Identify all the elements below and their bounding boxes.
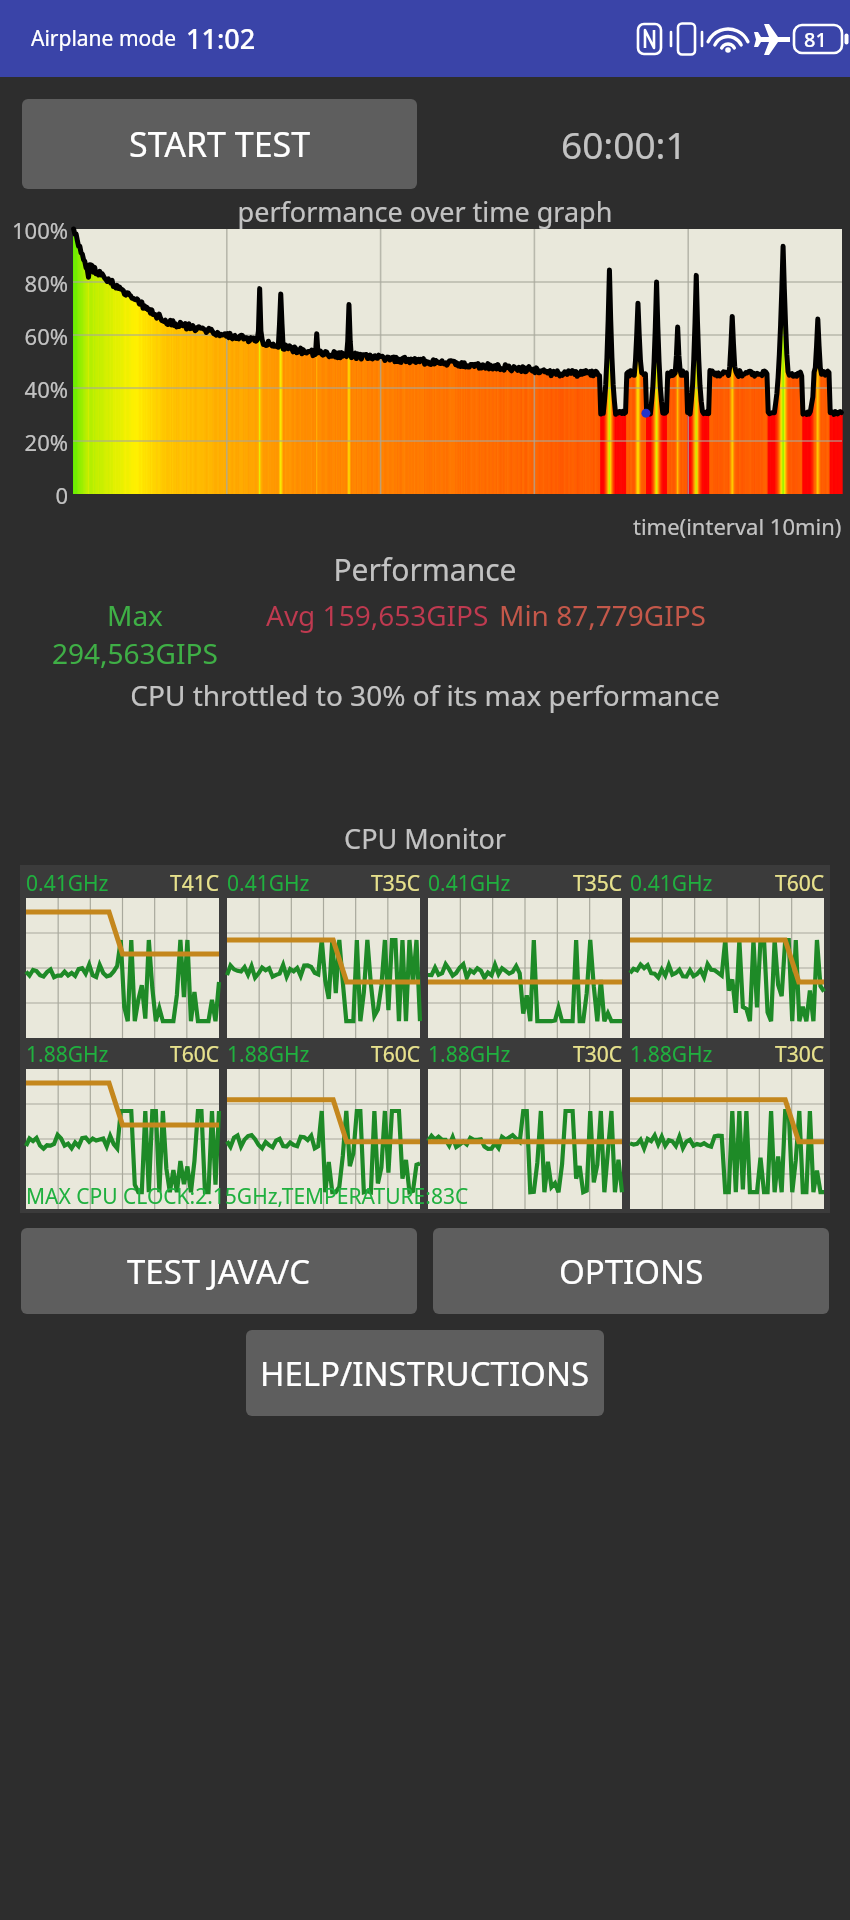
staticText: Avg 159,653GIPS bbox=[266, 596, 489, 634]
staticText: 1.88GHz bbox=[428, 1040, 511, 1069]
staticText: Max bbox=[107, 596, 163, 634]
staticText: 40% bbox=[0, 374, 68, 404]
button[interactable]: OPTIONS bbox=[433, 1228, 829, 1314]
staticText: 0.41GHz bbox=[26, 869, 109, 898]
staticText: Min 87,779GIPS bbox=[499, 596, 706, 634]
staticText: 1.88GHz bbox=[26, 1040, 109, 1069]
staticText: CPU Monitor bbox=[0, 820, 850, 857]
staticText: performance over time graph bbox=[0, 193, 850, 230]
button[interactable]: TEST JAVA/C bbox=[21, 1228, 417, 1314]
staticText: 0.41GHz bbox=[227, 869, 310, 898]
staticText: T30C bbox=[573, 1040, 622, 1069]
staticText: T60C bbox=[170, 1040, 219, 1069]
staticText: 60:00:1 bbox=[561, 119, 687, 169]
staticText: Performance bbox=[0, 549, 850, 590]
staticText: START TEST bbox=[129, 121, 311, 167]
button[interactable]: HELP/INSTRUCTIONS bbox=[246, 1330, 604, 1416]
staticText: 100% bbox=[0, 215, 68, 245]
staticText: 81 bbox=[804, 26, 827, 53]
staticText: T41C bbox=[170, 869, 219, 898]
staticText: 1.88GHz bbox=[227, 1040, 310, 1069]
staticText: T35C bbox=[573, 869, 622, 898]
staticText: time(interval 10min) bbox=[633, 511, 842, 541]
button[interactable]: START TEST bbox=[22, 99, 417, 189]
staticText: Airplane mode bbox=[31, 24, 177, 53]
staticText: MAX CPU CLOCK:2.15GHz,TEMPERATURE:83C bbox=[26, 1182, 469, 1211]
staticText: CPU throttled to 30% of its max performa… bbox=[0, 676, 850, 714]
staticText: 294,563GIPS bbox=[52, 634, 218, 672]
staticText: 60% bbox=[0, 321, 68, 351]
staticText: HELP/INSTRUCTIONS bbox=[260, 1351, 590, 1396]
staticText: 0 bbox=[0, 480, 68, 510]
staticText: 11:02 bbox=[186, 20, 256, 57]
staticText: 80% bbox=[0, 268, 68, 298]
staticText: 0.41GHz bbox=[428, 869, 511, 898]
staticText: T60C bbox=[775, 869, 824, 898]
staticText: T35C bbox=[371, 869, 420, 898]
staticText: 20% bbox=[0, 427, 68, 457]
staticText: T30C bbox=[775, 1040, 824, 1069]
staticText: T60C bbox=[371, 1040, 420, 1069]
staticText: 1.88GHz bbox=[630, 1040, 713, 1069]
staticText: 0.41GHz bbox=[630, 869, 713, 898]
staticText: TEST JAVA/C bbox=[127, 1249, 311, 1294]
staticText: OPTIONS bbox=[559, 1249, 704, 1294]
